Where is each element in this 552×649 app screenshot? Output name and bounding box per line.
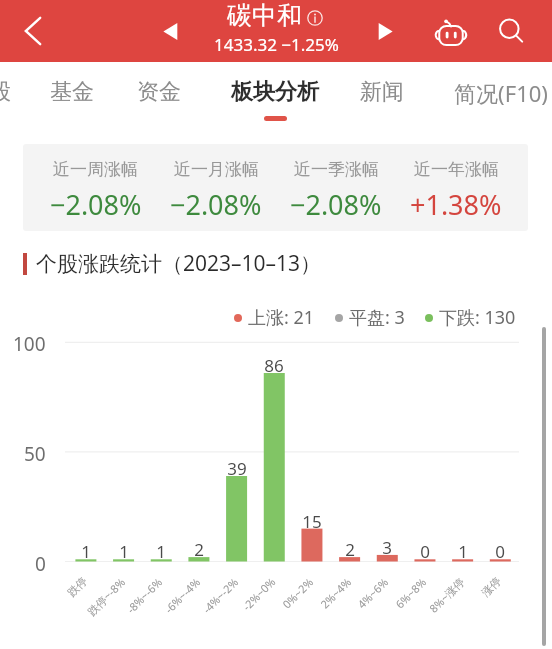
staticText: −2.08% xyxy=(50,186,142,223)
staticText: 资金 xyxy=(137,78,181,106)
staticText: 4%~6% xyxy=(354,574,392,611)
staticText: 0%~2% xyxy=(279,574,317,611)
staticText: −2.08% xyxy=(290,186,382,223)
staticText: 15 xyxy=(302,510,322,529)
staticText: 碳中和 xyxy=(227,0,302,31)
staticText: 6%~8% xyxy=(392,574,430,611)
staticText: 1 xyxy=(119,540,129,559)
button[interactable]: Next sector xyxy=(365,11,405,51)
staticText: 2 xyxy=(194,538,204,557)
button[interactable]: 板块分析 xyxy=(215,62,335,124)
staticText: 0 xyxy=(35,551,46,577)
staticText: 39 xyxy=(227,457,247,476)
staticText: 1 xyxy=(156,540,166,559)
staticText: -2%~0% xyxy=(239,574,279,614)
staticText: 86 xyxy=(264,354,284,373)
staticText: 个股涨跌统计（2023–10–13） xyxy=(36,249,322,278)
button[interactable]: 股 xyxy=(0,62,60,124)
button[interactable]: 简况(F10) xyxy=(441,62,552,124)
staticText: -8%~-6% xyxy=(123,574,166,616)
staticText: 跌停~-8% xyxy=(84,574,129,618)
staticText: 股 xyxy=(0,78,11,106)
button[interactable]: Search xyxy=(489,9,533,53)
button[interactable]: 资金 xyxy=(99,62,219,124)
button[interactable]: 新闻 xyxy=(322,62,442,124)
staticText: 100 xyxy=(13,331,46,357)
button[interactable]: Previous sector xyxy=(150,11,190,51)
staticText: 1 xyxy=(458,540,468,559)
staticText: 1433.32 −1.25% xyxy=(214,33,339,56)
staticText: 基金 xyxy=(50,78,94,106)
staticText: +1.38% xyxy=(410,186,502,223)
staticText: 2 xyxy=(345,538,355,557)
staticText: 新闻 xyxy=(360,78,404,106)
staticText: 近一周涨幅 xyxy=(53,159,138,180)
staticText: 平盘: 3 xyxy=(349,305,405,330)
staticText: 50 xyxy=(24,441,46,467)
staticText: 简况(F10) xyxy=(454,78,548,108)
staticText: 下跌: 130 xyxy=(439,305,516,330)
staticText: 近一月涨幅 xyxy=(174,159,259,180)
staticText: 0 xyxy=(495,540,505,559)
staticText: 2%~4% xyxy=(317,574,355,611)
staticText: -6%~-4% xyxy=(161,574,204,616)
staticText: -4%~-2% xyxy=(199,574,242,616)
staticText: 近一年涨幅 xyxy=(414,159,499,180)
staticText: −2.08% xyxy=(170,186,262,223)
staticText: 涨停 xyxy=(478,574,504,599)
staticText: 1 xyxy=(81,540,91,559)
staticText: 8%~涨停 xyxy=(426,574,468,616)
button[interactable]: Back xyxy=(11,9,55,53)
button[interactable]: AI assistant xyxy=(429,9,473,53)
staticText: 上涨: 21 xyxy=(248,305,315,330)
button[interactable]: 基金 xyxy=(12,62,132,124)
staticText: 0 xyxy=(420,540,430,559)
staticText: 3 xyxy=(382,536,392,555)
staticText: 板块分析 xyxy=(231,78,319,106)
staticText: 跌停 xyxy=(64,574,90,599)
staticText: 近一季涨幅 xyxy=(294,159,379,180)
